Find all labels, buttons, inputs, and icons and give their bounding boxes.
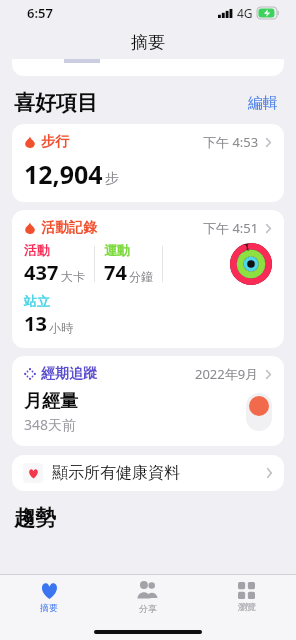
- staticText: 6:57: [27, 4, 53, 22]
- staticText: 運動: [104, 242, 130, 258]
- staticText: 74: [104, 259, 127, 286]
- staticText: 顯示所有健康資料: [52, 463, 180, 483]
- staticText: 小時: [49, 320, 73, 335]
- staticText: 步: [105, 170, 119, 188]
- staticText: 分鐘: [129, 269, 153, 284]
- staticText: 活動記錄: [41, 219, 97, 237]
- staticText: 喜好項目: [14, 90, 98, 116]
- staticText: 4G: [237, 5, 253, 21]
- staticText: 437: [24, 259, 59, 286]
- button[interactable]: 步行: [12, 124, 284, 202]
- button[interactable]: 編輯: [244, 91, 282, 116]
- staticText: 13: [24, 310, 47, 337]
- staticText: 站立: [24, 293, 50, 309]
- staticText: 經期追蹤: [41, 365, 97, 383]
- staticText: 摘要: [40, 602, 58, 613]
- staticText: 趨勢: [14, 505, 56, 531]
- staticText: 2022年9月: [195, 365, 259, 383]
- staticText: 12,904: [24, 157, 103, 191]
- staticText: 下午 4:51: [203, 219, 259, 237]
- staticText: 步行: [41, 133, 69, 151]
- staticText: 編輯: [248, 94, 278, 113]
- button[interactable]: 摘要: [0, 575, 98, 618]
- staticText: 摘要: [131, 32, 165, 53]
- button[interactable]: 分享: [98, 575, 197, 618]
- button[interactable]: 經期追蹤: [12, 356, 284, 446]
- staticText: 分享: [139, 603, 157, 614]
- staticText: 348天前: [24, 415, 77, 434]
- staticText: 活動: [24, 242, 50, 258]
- staticText: 大卡: [61, 269, 85, 284]
- button[interactable]: 瀏覽: [197, 575, 296, 618]
- staticText: 月經量: [24, 390, 78, 413]
- staticText: 下午 4:53: [203, 133, 259, 151]
- button[interactable]: [12, 59, 284, 76]
- button[interactable]: 活動記錄: [12, 210, 284, 348]
- staticText: 瀏覽: [238, 601, 256, 612]
- button[interactable]: 顯示所有健康資料: [12, 455, 284, 491]
